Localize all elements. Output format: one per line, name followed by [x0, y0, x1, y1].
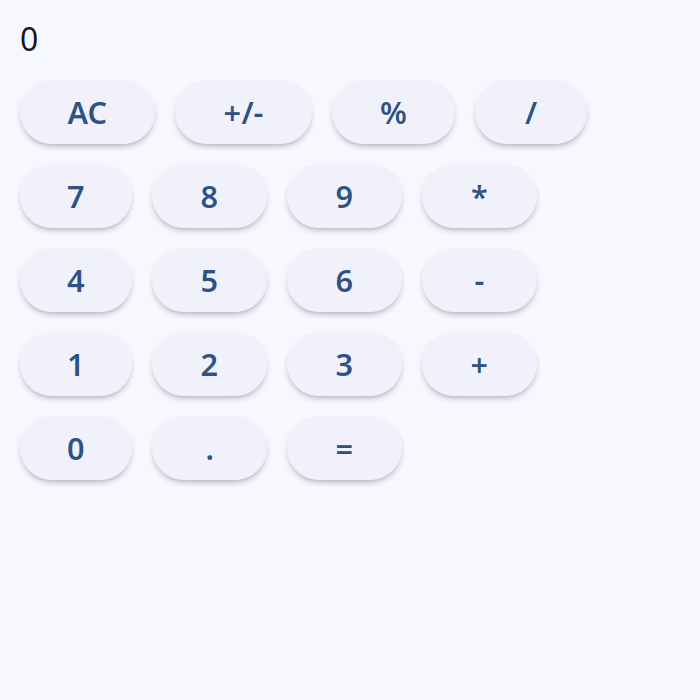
button[interactable]: 5 — [152, 248, 267, 312]
staticText: - — [474, 260, 484, 300]
button[interactable]: 4 — [20, 248, 132, 312]
button[interactable]: 1 — [20, 332, 132, 396]
button[interactable]: 6 — [287, 248, 402, 312]
button[interactable]: 8 — [152, 164, 267, 228]
button[interactable]: 2 — [152, 332, 267, 396]
button[interactable]: 7 — [20, 164, 132, 228]
staticText: AC — [67, 92, 107, 132]
button[interactable]: * — [422, 164, 537, 228]
button[interactable]: +/- — [175, 80, 312, 144]
button[interactable]: 9 — [287, 164, 402, 228]
staticText: 8 — [200, 176, 218, 216]
staticText: +/- — [223, 92, 263, 132]
button[interactable]: - — [422, 248, 537, 312]
staticText: 0 — [20, 17, 38, 60]
staticText: 7 — [67, 176, 85, 216]
staticText: 9 — [335, 176, 353, 216]
button[interactable]: / — [475, 80, 587, 144]
staticText: % — [380, 92, 407, 132]
button[interactable]: 3 — [287, 332, 402, 396]
staticText: = — [335, 428, 353, 468]
staticText: 5 — [200, 260, 218, 300]
button[interactable]: + — [422, 332, 537, 396]
button[interactable]: 0 — [20, 416, 132, 480]
staticText: 3 — [335, 344, 353, 384]
button[interactable]: . — [152, 416, 267, 480]
staticText: + — [470, 344, 488, 384]
staticText: * — [471, 176, 488, 216]
button[interactable]: % — [332, 80, 455, 144]
staticText: 2 — [200, 344, 218, 384]
staticText: . — [205, 428, 213, 468]
staticText: 0 — [67, 428, 85, 468]
staticText: 6 — [335, 260, 353, 300]
button[interactable]: AC — [20, 80, 155, 144]
staticText: 4 — [67, 260, 85, 300]
staticText: 1 — [67, 344, 85, 384]
staticText: / — [525, 92, 537, 132]
button[interactable]: = — [287, 416, 402, 480]
